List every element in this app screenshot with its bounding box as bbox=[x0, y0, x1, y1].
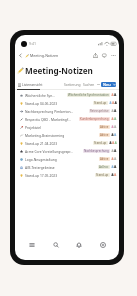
button[interactable]: Share bbox=[91, 51, 100, 60]
staticText: Listenansicht bbox=[22, 82, 43, 86]
staticText: Nachbesprechung bbox=[84, 149, 109, 153]
staticText: Acme Core Vorstellungsgespr... bbox=[25, 149, 82, 153]
button[interactable]: More options bbox=[109, 51, 118, 60]
staticText: Wöchentliche Synchronisation bbox=[68, 93, 109, 97]
button[interactable]: A/B-Testergebnisse bbox=[15, 163, 119, 171]
button[interactable]: Stand-up 04-06-2023 bbox=[15, 99, 119, 107]
staticText: Stand-up bbox=[94, 101, 107, 105]
staticText: Stand-up 21-04-2023 bbox=[25, 141, 92, 145]
button[interactable]: Stand-up 21-04-2023 bbox=[15, 139, 119, 147]
button[interactable]: Comments bbox=[100, 51, 109, 60]
button[interactable]: Respectiu QBO - Marketingf... bbox=[15, 115, 119, 123]
staticText: Aktive bbox=[100, 133, 109, 137]
staticText: Ad-hoc bbox=[99, 165, 109, 169]
button[interactable]: Search bbox=[48, 237, 63, 252]
staticText: Marketing-Brainstorming bbox=[25, 133, 98, 137]
button[interactable]: Listenansicht bbox=[18, 82, 44, 86]
button[interactable]: Menu bbox=[24, 237, 39, 252]
staticText: Meeting-Notizen bbox=[30, 53, 59, 58]
button[interactable]: Logo-Neugestaltung bbox=[15, 155, 119, 163]
staticText: Logo-Neugestaltung bbox=[25, 157, 98, 161]
button[interactable]: Sortierung bbox=[64, 82, 81, 86]
button[interactable]: Acme Core Vorstellungsgespr... bbox=[15, 147, 119, 155]
button[interactable]: Suchen bbox=[83, 82, 95, 86]
staticText: Stand-up 04-06-2023 bbox=[25, 101, 92, 105]
button[interactable]: Marketing-Brainstorming bbox=[15, 131, 119, 139]
button[interactable]: Back bbox=[16, 51, 25, 60]
staticText: A/B-Testergebnisse bbox=[25, 165, 97, 169]
staticText: Nachbesprechung Pimberton... bbox=[25, 109, 88, 113]
staticText: Stand-up bbox=[94, 141, 107, 145]
button[interactable]: Wöchentliche Syn... bbox=[15, 91, 119, 99]
staticText: Aktive bbox=[100, 125, 109, 129]
staticText: Retrospektive bbox=[90, 109, 109, 113]
button[interactable]: Neu bbox=[101, 82, 116, 87]
staticText: 9:41 bbox=[29, 41, 37, 46]
button[interactable]: Projektziel bbox=[15, 123, 119, 131]
staticText: Kundenbesprechung bbox=[80, 117, 109, 121]
button[interactable]: Stand-up 17-05-2023 bbox=[15, 171, 119, 179]
button[interactable]: Nachbesprechung Pimberton... bbox=[15, 107, 119, 115]
staticText: Stand-up 17-05-2023 bbox=[25, 173, 94, 177]
staticText: Stand-up bbox=[96, 173, 109, 177]
staticText: Wöchentliche Syn... bbox=[25, 93, 66, 97]
staticText: Neu bbox=[103, 82, 111, 87]
staticText: Projektziel bbox=[25, 125, 98, 129]
button[interactable]: Profile bbox=[95, 237, 110, 252]
button[interactable]: Meeting-Notizen bbox=[25, 53, 59, 58]
staticText: Meeting-Notizen bbox=[25, 65, 93, 76]
button[interactable]: Notifications bbox=[71, 237, 86, 252]
staticText: Aktive bbox=[100, 157, 109, 161]
staticText: Respectiu QBO - Marketingf... bbox=[25, 117, 78, 121]
button[interactable]: View options bbox=[96, 82, 100, 86]
